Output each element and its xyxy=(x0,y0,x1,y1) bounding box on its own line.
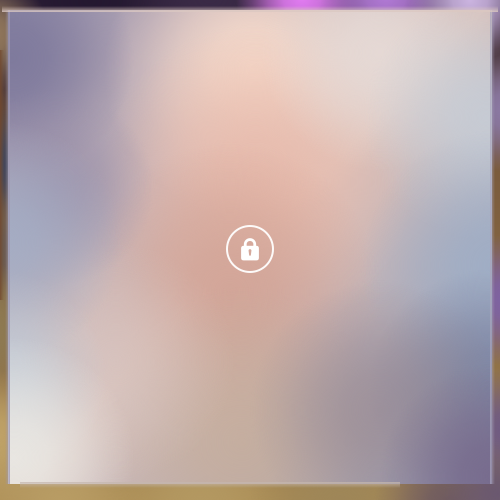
button[interactable]: Locked xyxy=(0,0,500,500)
